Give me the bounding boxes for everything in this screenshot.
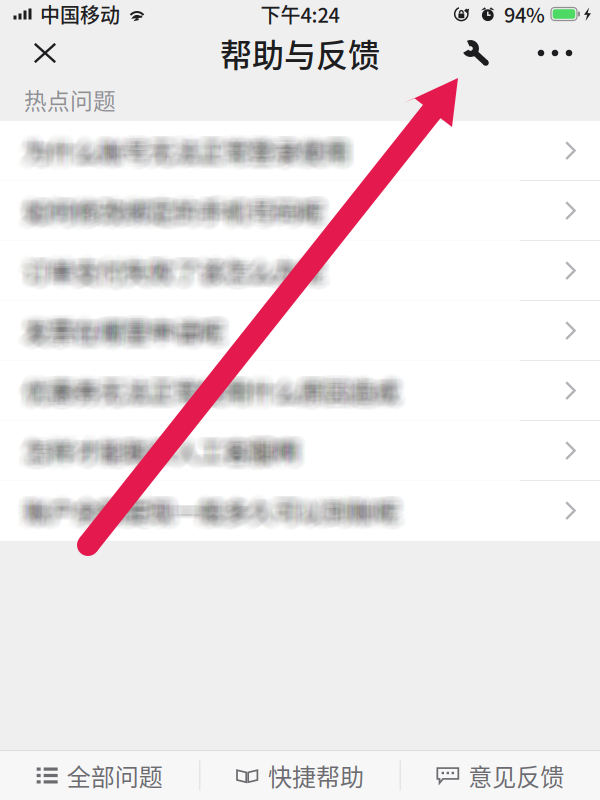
staticText: 发票在哪里申请呢 (30, 316, 230, 353)
staticText: 优惠券无法正常使用什么原因造成 (26, 378, 401, 414)
staticText: 怎样才能联系人工客服啊 (30, 432, 305, 469)
button[interactable]: 优惠券无法正常使用什么原因造成 (0, 361, 600, 421)
staticText: 发票在哪里申请呢 (26, 309, 226, 345)
staticText: 订单支付失败了该怎么办呢 (28, 255, 328, 292)
staticText: 发票在哪里申请呢 (26, 316, 226, 353)
staticText: 账户余额提现一般多久可以到账呢 (28, 491, 403, 527)
staticText: 订单支付失败了该怎么办呢 (26, 259, 326, 295)
button[interactable]: 怎样才能联系人工客服啊 (0, 421, 600, 481)
staticText: 账户余额提现一般多久可以到账呢 (26, 488, 401, 525)
staticText: 发票在哪里申请呢 (20, 311, 220, 348)
staticText: 怎样才能联系人工客服啊 (16, 431, 291, 468)
staticText: 怎样才能联系人工客服啊 (21, 431, 296, 467)
staticText: 如何修改绑定的手机号码呢 (25, 189, 325, 225)
staticText: 账户余额提现一般多久可以到账呢 (21, 499, 396, 535)
staticText: 优惠券无法正常使用什么原因造成 (29, 371, 404, 407)
staticText: 发票在哪里申请呢 (30, 311, 230, 347)
staticText: 为什么账号无法正常登录使用 (23, 136, 348, 173)
button[interactable]: 关闭 (11, 28, 79, 78)
staticText: 为什么账号无法正常登录使用 (21, 139, 346, 175)
button[interactable]: 发票在哪里申请呢 (0, 301, 600, 361)
staticText: 为什么账号无法正常登录使用 (25, 139, 350, 175)
staticText: 账户余额提现一般多久可以到账呢 (21, 495, 396, 532)
staticText: 订单支付失败了该怎么办呢 (21, 256, 321, 293)
staticText: 为什么账号无法正常登录使用 (22, 129, 347, 165)
staticText: 订单支付失败了该怎么办呢 (18, 250, 318, 286)
staticText: 订单支付失败了该怎么办呢 (24, 256, 324, 293)
staticText: 如何修改绑定的手机号码呢 (26, 190, 326, 226)
staticText: 发票在哪里申请呢 (27, 316, 227, 353)
staticText: 订单支付失败了该怎么办呢 (19, 255, 319, 292)
staticText: 账户余额提现一般多久可以到账呢 (24, 488, 399, 525)
staticText: 发票在哪里申请呢 (27, 314, 227, 351)
staticText: 为什么账号无法正常登录使用 (17, 134, 342, 171)
button[interactable]: 设置 (446, 28, 504, 78)
staticText: 订单支付失败了该怎么办呢 (25, 259, 325, 295)
staticText: 发票在哪里申请呢 (28, 314, 228, 351)
button[interactable]: 快捷帮助 (200, 751, 400, 800)
staticText: 为什么账号无法正常登录使用 (23, 133, 348, 170)
button[interactable]: 意见反馈 (401, 751, 600, 800)
staticText: 账户余额提现一般多久可以到账呢 (27, 493, 402, 530)
staticText: 账户余额提现一般多久可以到账呢 (23, 489, 398, 525)
staticText: 如何修改绑定的手机号码呢 (20, 190, 320, 226)
button[interactable]: 账户余额提现一般多久可以到账呢 (0, 481, 600, 541)
staticText: 账户余额提现一般多久可以到账呢 (19, 487, 394, 524)
staticText: 账户余额提现一般多久可以到账呢 (32, 492, 407, 529)
staticText: 发票在哪里申请呢 (24, 319, 224, 355)
staticText: 为什么账号无法正常登录使用 (19, 132, 344, 169)
staticText: 账户余额提现一般多久可以到账呢 (19, 490, 394, 526)
staticText: 发票在哪里申请呢 (21, 314, 221, 351)
staticText: 发票在哪里申请呢 (24, 314, 224, 351)
staticText: 发票在哪里申请呢 (17, 311, 217, 347)
staticText: 如何修改绑定的手机号码呢 (21, 195, 321, 232)
staticText: 订单支付失败了该怎么办呢 (25, 255, 325, 292)
staticText: 发票在哪里申请呢 (28, 308, 228, 345)
staticText: 发票在哪里申请呢 (25, 319, 225, 355)
staticText: 账户余额提现一般多久可以到账呢 (20, 492, 395, 529)
staticText: 优惠券无法正常使用什么原因造成 (17, 370, 392, 406)
staticText: 优惠券无法正常使用什么原因造成 (21, 377, 396, 414)
staticText: 优惠券无法正常使用什么原因造成 (20, 373, 395, 410)
staticText: 优惠券无法正常使用什么原因造成 (28, 367, 403, 404)
staticText: 优惠券无法正常使用什么原因造成 (28, 374, 403, 411)
staticText: 发票在哪里申请呢 (28, 316, 228, 353)
staticText: 如何修改绑定的手机号码呢 (26, 188, 326, 225)
staticText: 为什么账号无法正常登录使用 (22, 138, 347, 174)
staticText: 订单支付失败了该怎么办呢 (20, 248, 320, 285)
staticText: 怎样才能联系人工客服啊 (23, 431, 298, 467)
button[interactable]: 为什么账号无法正常登录使用 (0, 121, 600, 181)
staticText: 发票在哪里申请呢 (21, 319, 221, 355)
staticText: 发票在哪里申请呢 (25, 314, 225, 351)
staticText: 为什么账号无法正常登录使用 (25, 126, 350, 163)
staticText: 账户余额提现一般多久可以到账呢 (31, 493, 406, 530)
staticText: 订单支付失败了该怎么办呢 (29, 253, 329, 290)
staticText: 为什么账号无法正常登录使用 (19, 137, 344, 174)
staticText: 如何修改绑定的手机号码呢 (23, 189, 323, 225)
staticText: 订单支付失败了该怎么办呢 (25, 251, 325, 287)
staticText: 为什么账号无法正常登录使用 (21, 129, 346, 165)
staticText: 如何修改绑定的手机号码呢 (24, 199, 324, 235)
staticText: 账户余额提现一般多久可以到账呢 (19, 491, 394, 528)
staticText: 账户余额提现一般多久可以到账呢 (25, 498, 400, 534)
staticText: 如何修改绑定的手机号码呢 (24, 194, 324, 231)
staticText: 账户余额提现一般多久可以到账呢 (25, 486, 400, 523)
staticText: 账户余额提现一般多久可以到账呢 (23, 497, 398, 534)
staticText: 优惠券无法正常使用什么原因造成 (26, 370, 401, 406)
staticText: 订单支付失败了该怎么办呢 (22, 253, 322, 290)
staticText: 为什么账号无法正常登录使用 (29, 128, 354, 165)
staticText: 优惠券无法正常使用什么原因造成 (24, 367, 399, 404)
staticText: 怎样才能联系人工客服啊 (23, 435, 298, 472)
staticText: 怎样才能联系人工客服啊 (28, 428, 303, 465)
staticText: 为什么账号无法正常登录使用 (16, 131, 341, 167)
button[interactable]: 订单支付失败了该怎么办呢 (0, 241, 600, 301)
button[interactable]: 如何修改绑定的手机号码呢 (0, 181, 600, 241)
staticText: 发票在哪里申请呢 (20, 309, 220, 345)
button[interactable]: 全部问题 (0, 751, 199, 800)
staticText: 94% (504, 0, 545, 28)
staticText: 如何修改绑定的手机号码呢 (18, 197, 318, 234)
staticText: 发票在哪里申请呢 (28, 310, 228, 346)
staticText: 订单支付失败了该怎么办呢 (21, 252, 321, 289)
button[interactable]: 更多 (524, 28, 586, 78)
staticText: 订单支付失败了该怎么办呢 (21, 251, 321, 288)
